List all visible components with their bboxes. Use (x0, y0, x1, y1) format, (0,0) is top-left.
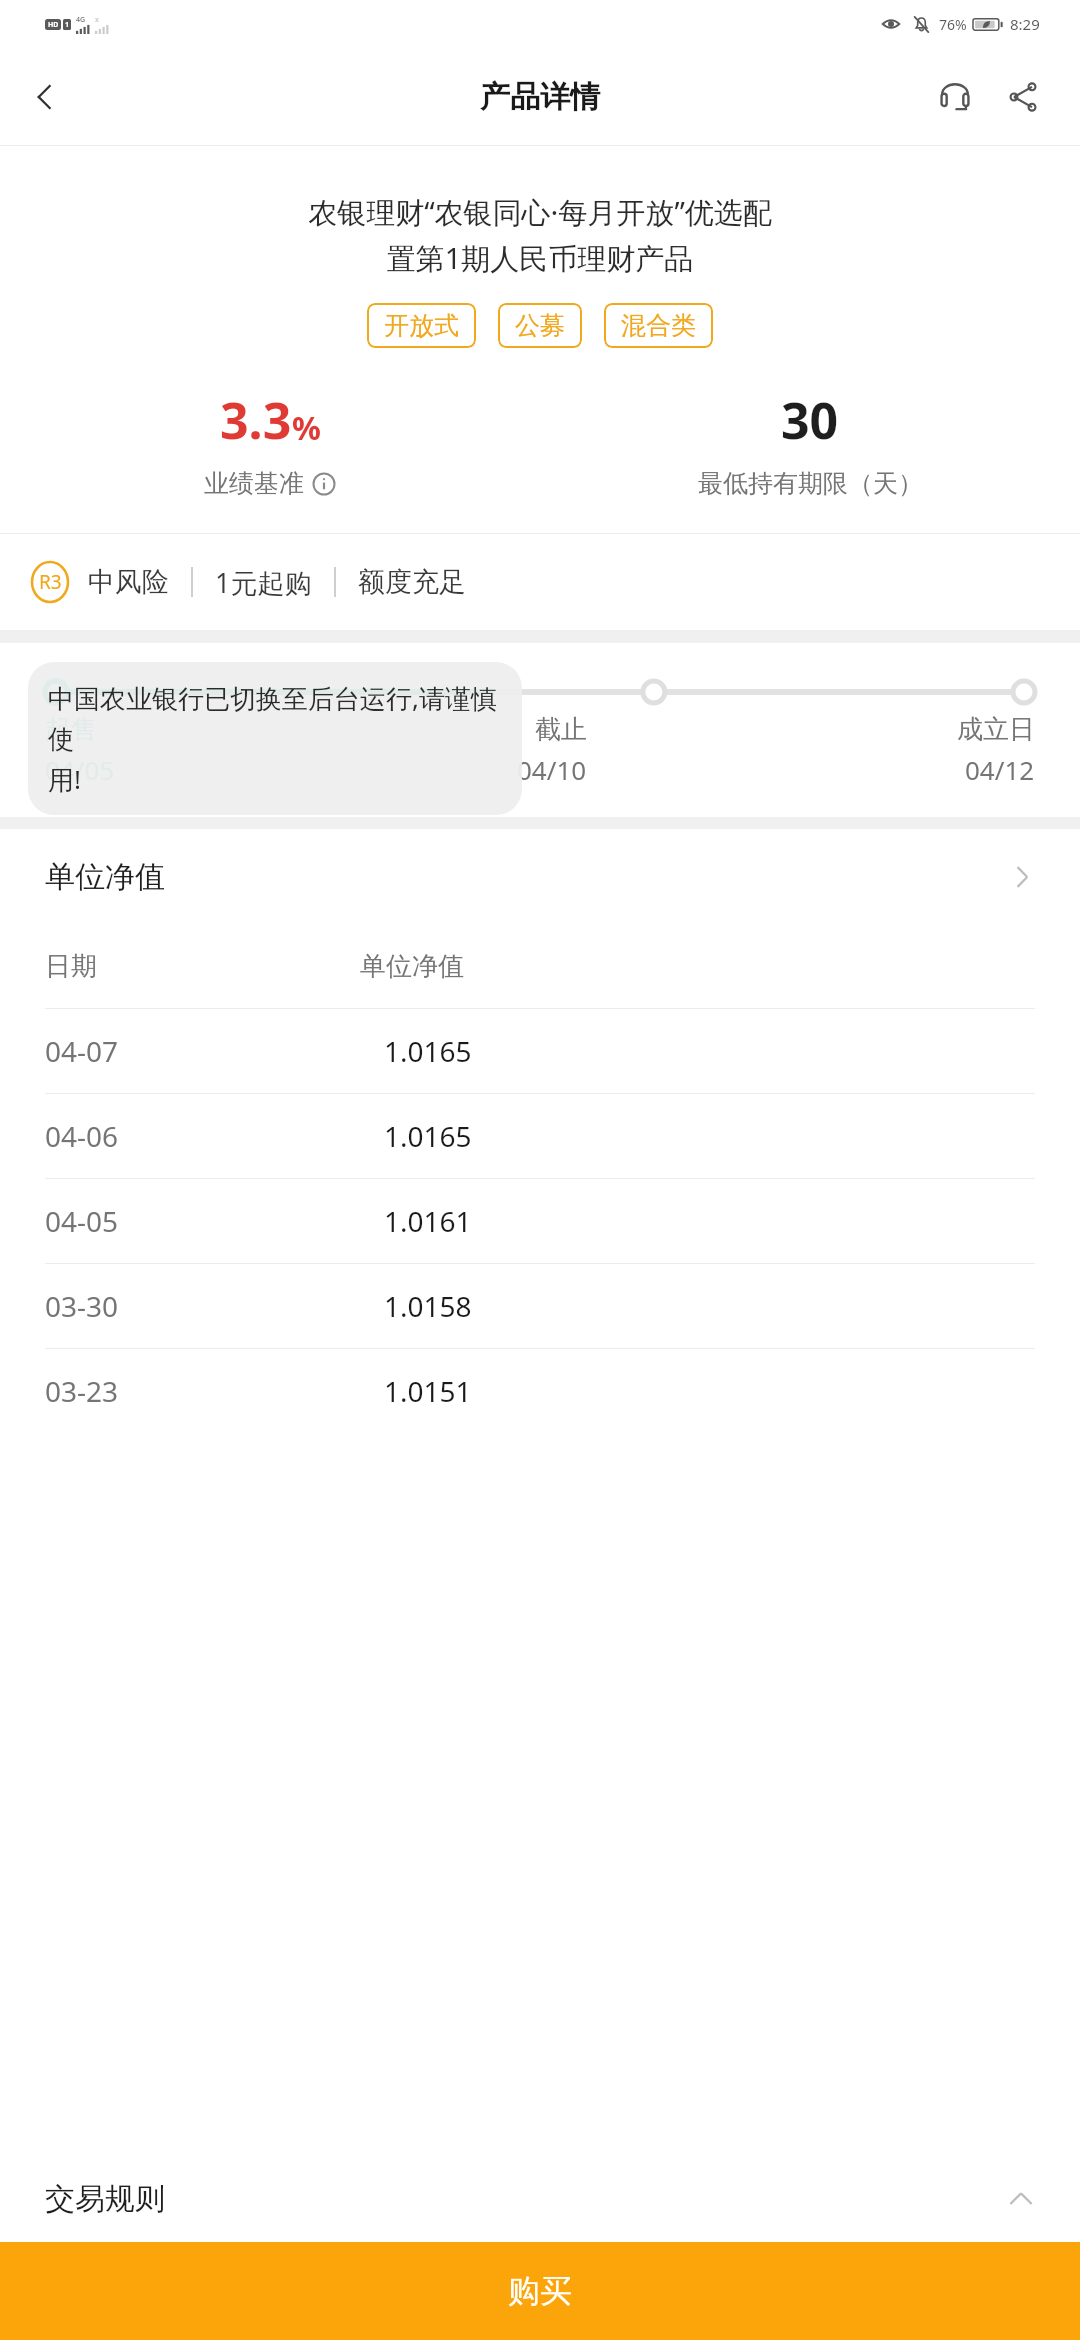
staticText: % (292, 406, 321, 450)
button[interactable]: Customer service (924, 66, 986, 128)
button[interactable]: 购买 (0, 2242, 1080, 2340)
staticText: 03-30 (45, 1287, 119, 1325)
staticText: 中风险 (88, 565, 169, 599)
button[interactable]: 单位净值 (0, 829, 1080, 924)
staticText: x (95, 15, 99, 25)
staticText: 混合类 (621, 310, 696, 341)
staticText: 业绩基准 (204, 468, 304, 499)
staticText: 开放式 (384, 310, 459, 341)
button[interactable]: Back (14, 66, 76, 128)
button[interactable]: 开放式 (367, 303, 476, 348)
staticText: 交易规则 (45, 2180, 165, 2218)
staticText: 起售 (45, 713, 97, 746)
staticText: 最低持有期限（天） (698, 468, 923, 499)
button[interactable]: 04-05 (0, 1179, 1080, 1263)
staticText: 1 (65, 20, 70, 30)
staticText: 3.3 (220, 386, 292, 454)
button[interactable]: R3 (0, 534, 1080, 630)
staticText: 额度充足 (358, 565, 466, 599)
staticText: 成立日 (957, 713, 1035, 746)
staticText: 农银理财“农银同心·每月开放”优选配 置第1期人民币理财产品 (308, 192, 772, 277)
staticText: 单位净值 (45, 858, 165, 896)
staticText: 1元起购 (215, 564, 312, 601)
button[interactable]: Share (992, 66, 1054, 128)
button[interactable]: 03-30 (0, 1264, 1080, 1348)
staticText: 04/10 (517, 752, 587, 787)
staticText: 30 (781, 386, 839, 454)
button[interactable]: 交易规则 (0, 2156, 1080, 2242)
staticText: 购买 (508, 2271, 572, 2311)
staticText: 1.0151 (384, 1372, 472, 1410)
staticText: 04-06 (45, 1117, 119, 1155)
staticText: 截止 (535, 713, 587, 746)
staticText: 中国农业银行已切换至后台运行,请谨慎使 用! (48, 680, 502, 797)
staticText: 单位净值 (360, 950, 464, 983)
button[interactable]: 04-07 (0, 1009, 1080, 1093)
staticText: R3 (39, 569, 62, 595)
staticText: 8:29 (1010, 14, 1040, 34)
staticText: 1.0165 (384, 1032, 472, 1070)
staticText: 03-23 (45, 1372, 119, 1410)
button[interactable]: 04-06 (0, 1094, 1080, 1178)
staticText: 日期 (45, 950, 97, 983)
staticText: 04-05 (45, 1202, 119, 1240)
staticText: 1.0161 (384, 1202, 472, 1240)
button[interactable]: 公募 (498, 303, 582, 348)
button[interactable]: 03-23 (0, 1349, 1080, 1433)
staticText: 产品详情 (480, 78, 600, 116)
staticText: 4G (76, 15, 86, 25)
staticText: 04/05 (45, 752, 115, 787)
staticText: 1.0158 (384, 1287, 472, 1325)
staticText: HD (48, 20, 59, 30)
staticText: 04/12 (965, 752, 1035, 787)
staticText: 04-07 (45, 1032, 119, 1070)
staticText: 76% (939, 15, 967, 34)
button[interactable]: 混合类 (604, 303, 713, 348)
staticText: 1.0165 (384, 1117, 472, 1155)
staticText: 公募 (515, 310, 565, 341)
